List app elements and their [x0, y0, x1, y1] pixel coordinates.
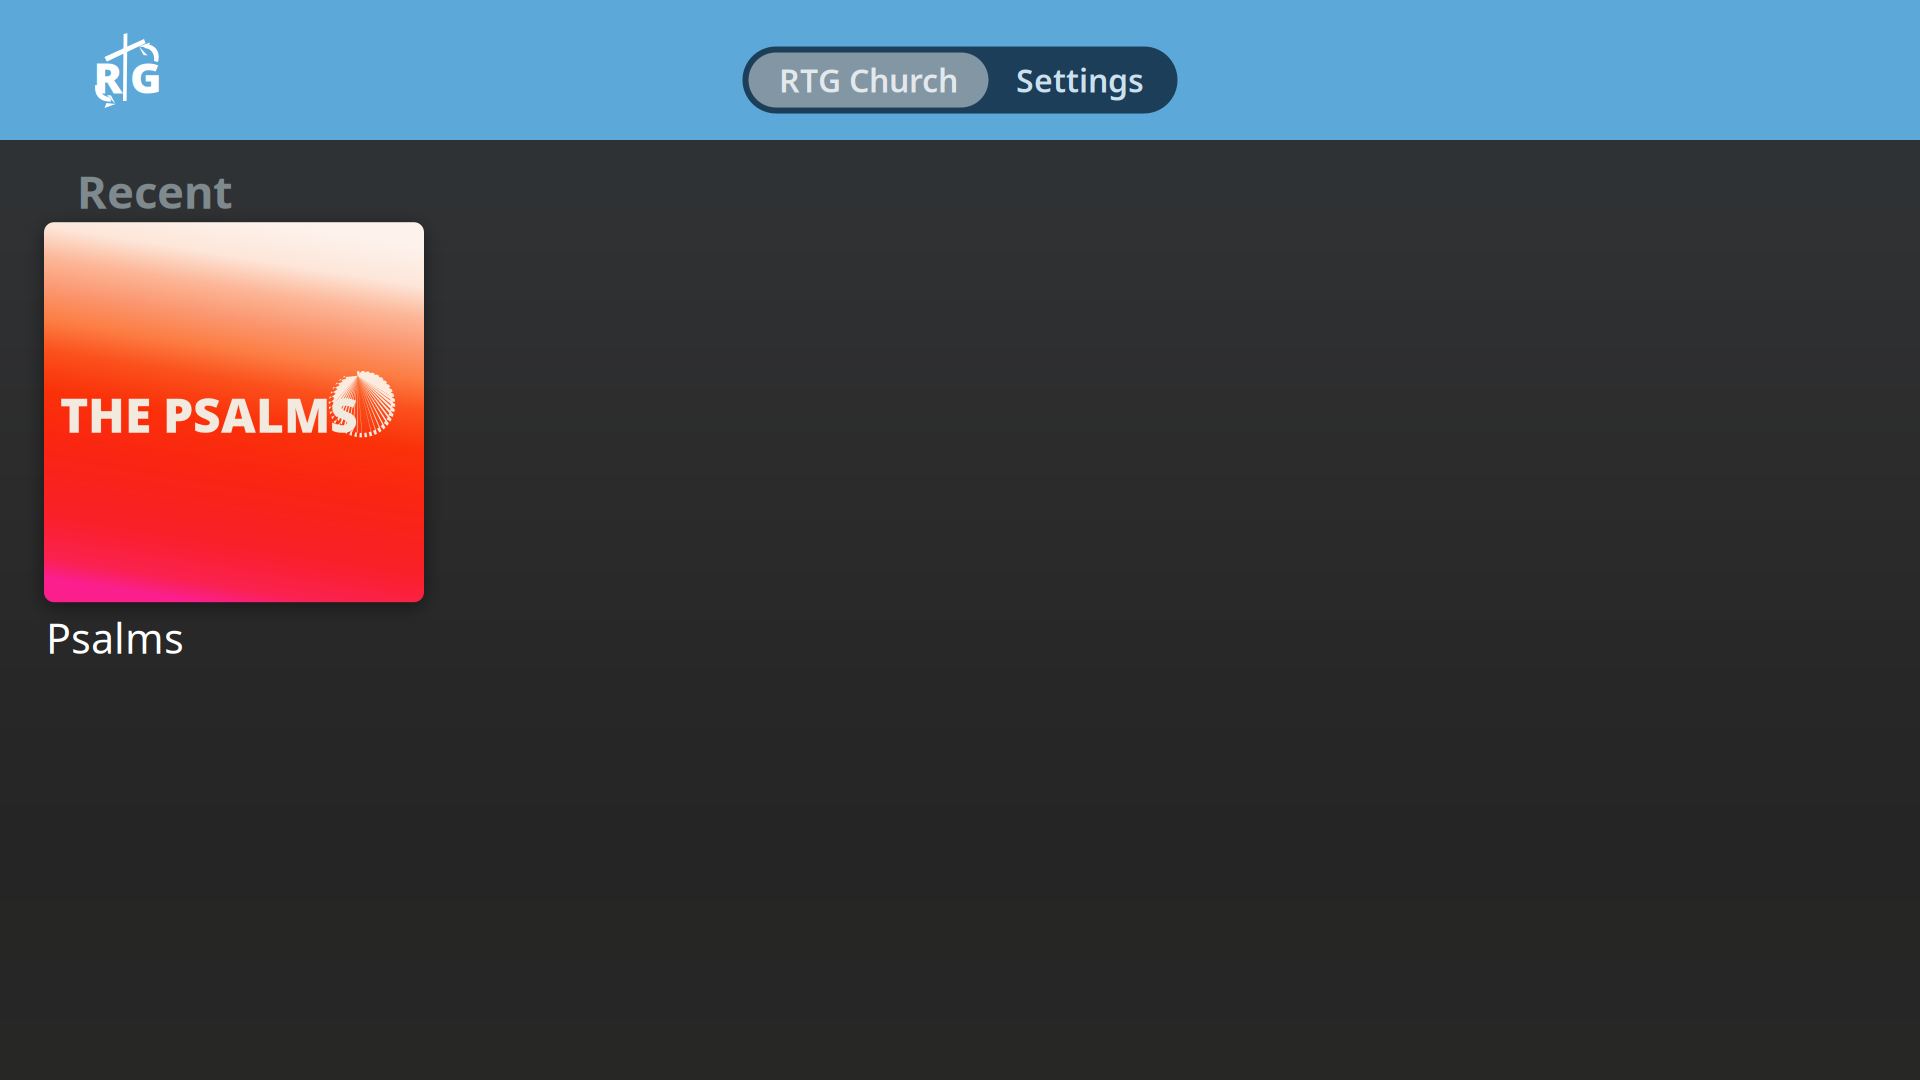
button[interactable]: THE PSALMS — [0, 222, 424, 665]
staticText: R — [93, 49, 122, 105]
staticText: Recent — [77, 161, 233, 221]
staticText: Settings — [1016, 59, 1144, 101]
staticText: THE PSALMS — [60, 382, 358, 446]
button[interactable]: Settings — [988, 52, 1171, 107]
button[interactable]: RTG Church — [748, 52, 988, 107]
staticText: Psalms — [46, 610, 184, 665]
staticText: G — [130, 49, 162, 105]
button[interactable]: RTG Church home — [0, 28, 166, 112]
staticText: RTG Church — [779, 59, 958, 101]
